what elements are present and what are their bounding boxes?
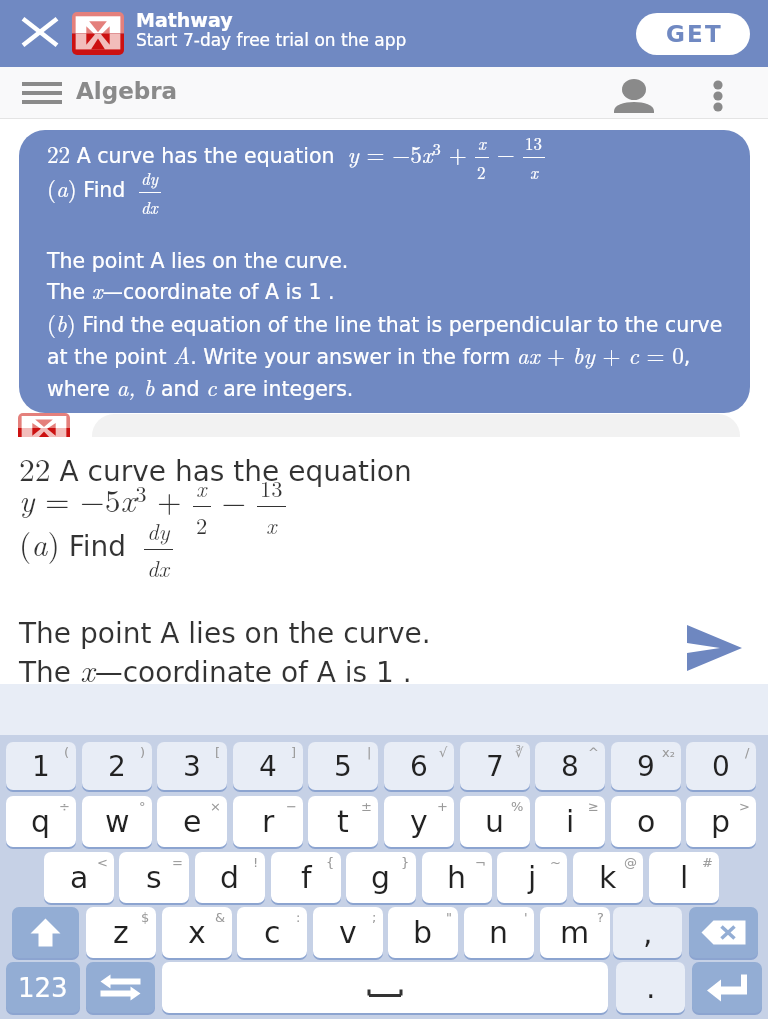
button[interactable]: 1: [6, 742, 76, 790]
staticText: 4: [259, 750, 277, 783]
staticText: ': [524, 910, 528, 925]
button[interactable]: .: [616, 962, 685, 1013]
staticText: [: [215, 745, 221, 760]
button[interactable]: p: [686, 796, 756, 847]
staticText: q: [31, 804, 51, 839]
staticText: −: [211, 477, 257, 522]
button[interactable]: i: [535, 796, 605, 847]
button[interactable]: Space: [162, 962, 608, 1013]
staticText: (b) Find the equation of the line that i…: [47, 306, 731, 403]
button[interactable]: v: [313, 907, 383, 958]
button[interactable]: More options: [698, 73, 738, 113]
button[interactable]: n: [464, 907, 534, 958]
staticText: ): [140, 745, 146, 760]
staticText: a: [70, 860, 89, 895]
button[interactable]: c: [237, 907, 307, 958]
button[interactable]: Backspace: [689, 907, 758, 958]
button[interactable]: a: [44, 852, 114, 903]
staticText: 22 A curve has the equation y = −5x3 +: [47, 136, 475, 169]
button[interactable]: Shift: [12, 907, 79, 958]
button[interactable]: GET: [636, 13, 750, 55]
staticText: The point A lies on the curve.: [47, 249, 349, 273]
button[interactable]: Numbers: [6, 962, 80, 1013]
staticText: !: [253, 855, 259, 870]
button[interactable]: m: [540, 907, 610, 958]
staticText: −: [286, 799, 297, 814]
button[interactable]: h: [422, 852, 492, 903]
staticText: d: [220, 860, 240, 895]
button[interactable]: 9: [611, 742, 681, 790]
staticText: <: [97, 855, 108, 870]
staticText: 22 A curve has the equation: [19, 445, 412, 490]
staticText: 13: [525, 131, 542, 155]
button[interactable]: 2: [82, 742, 152, 790]
button[interactable]: k: [573, 852, 643, 903]
button[interactable]: w: [82, 796, 152, 847]
button[interactable]: j: [497, 852, 567, 903]
staticText: ÷: [59, 799, 70, 814]
staticText: dx: [141, 195, 158, 219]
staticText: x: [478, 131, 486, 155]
button[interactable]: b: [388, 907, 458, 958]
button[interactable]: d: [195, 852, 265, 903]
staticText: dy: [147, 515, 170, 547]
staticText: 123: [18, 973, 68, 1003]
staticText: b: [413, 915, 433, 950]
button[interactable]: 7: [460, 742, 530, 790]
staticText: s: [146, 860, 162, 895]
button[interactable]: Menu: [14, 73, 70, 113]
button[interactable]: 0: [686, 742, 756, 790]
staticText: e: [183, 804, 202, 839]
staticText: ]: [291, 745, 297, 760]
staticText: k: [599, 860, 617, 895]
button[interactable]: Close ad: [20, 12, 60, 52]
staticText: ;: [372, 910, 377, 925]
staticText: Start 7-day free trial on the app: [136, 30, 407, 50]
button[interactable]: u: [460, 796, 530, 847]
staticText: dx: [147, 552, 170, 584]
button[interactable]: x: [162, 907, 232, 958]
button[interactable]: 22 A curve has the equation y = −5x3 +: [19, 130, 750, 413]
button[interactable]: 6: [384, 742, 454, 790]
staticText: x: [266, 509, 277, 541]
staticText: ": [446, 910, 452, 925]
button[interactable]: o: [611, 796, 681, 847]
staticText: i: [566, 804, 575, 839]
button[interactable]: f: [271, 852, 341, 903]
staticText: 13: [260, 472, 283, 504]
staticText: x₂: [662, 745, 675, 760]
button[interactable]: e: [157, 796, 227, 847]
button[interactable]: t: [308, 796, 378, 847]
button[interactable]: Account: [610, 73, 658, 113]
staticText: =: [172, 855, 183, 870]
staticText: 2: [196, 509, 208, 541]
button[interactable]: ,: [613, 907, 682, 958]
staticText: c: [264, 915, 281, 950]
staticText: −: [489, 136, 523, 169]
staticText: #: [702, 855, 713, 870]
staticText: y: [410, 804, 428, 839]
button[interactable]: y: [384, 796, 454, 847]
button[interactable]: q: [6, 796, 76, 847]
staticText: (: [64, 745, 70, 760]
staticText: j: [528, 860, 537, 895]
staticText: 0: [712, 750, 730, 783]
button[interactable]: 3: [157, 742, 227, 790]
staticText: x: [530, 160, 538, 184]
staticText: The x—coordinate of A is 1 .: [47, 273, 335, 306]
button[interactable]: 4: [233, 742, 303, 790]
staticText: °: [139, 799, 146, 814]
button[interactable]: 5: [308, 742, 378, 790]
button[interactable]: 8: [535, 742, 605, 790]
button[interactable]: l: [649, 852, 719, 903]
button[interactable]: z: [86, 907, 156, 958]
button[interactable]: Send: [676, 619, 748, 675]
button[interactable]: r: [233, 796, 303, 847]
button[interactable]: Switch keyboard: [86, 962, 155, 1013]
staticText: 6: [410, 750, 428, 783]
button[interactable]: s: [119, 852, 189, 903]
button[interactable]: Enter: [692, 962, 762, 1013]
staticText: t: [337, 804, 349, 839]
staticText: (a) Find: [19, 520, 144, 565]
button[interactable]: g: [346, 852, 416, 903]
